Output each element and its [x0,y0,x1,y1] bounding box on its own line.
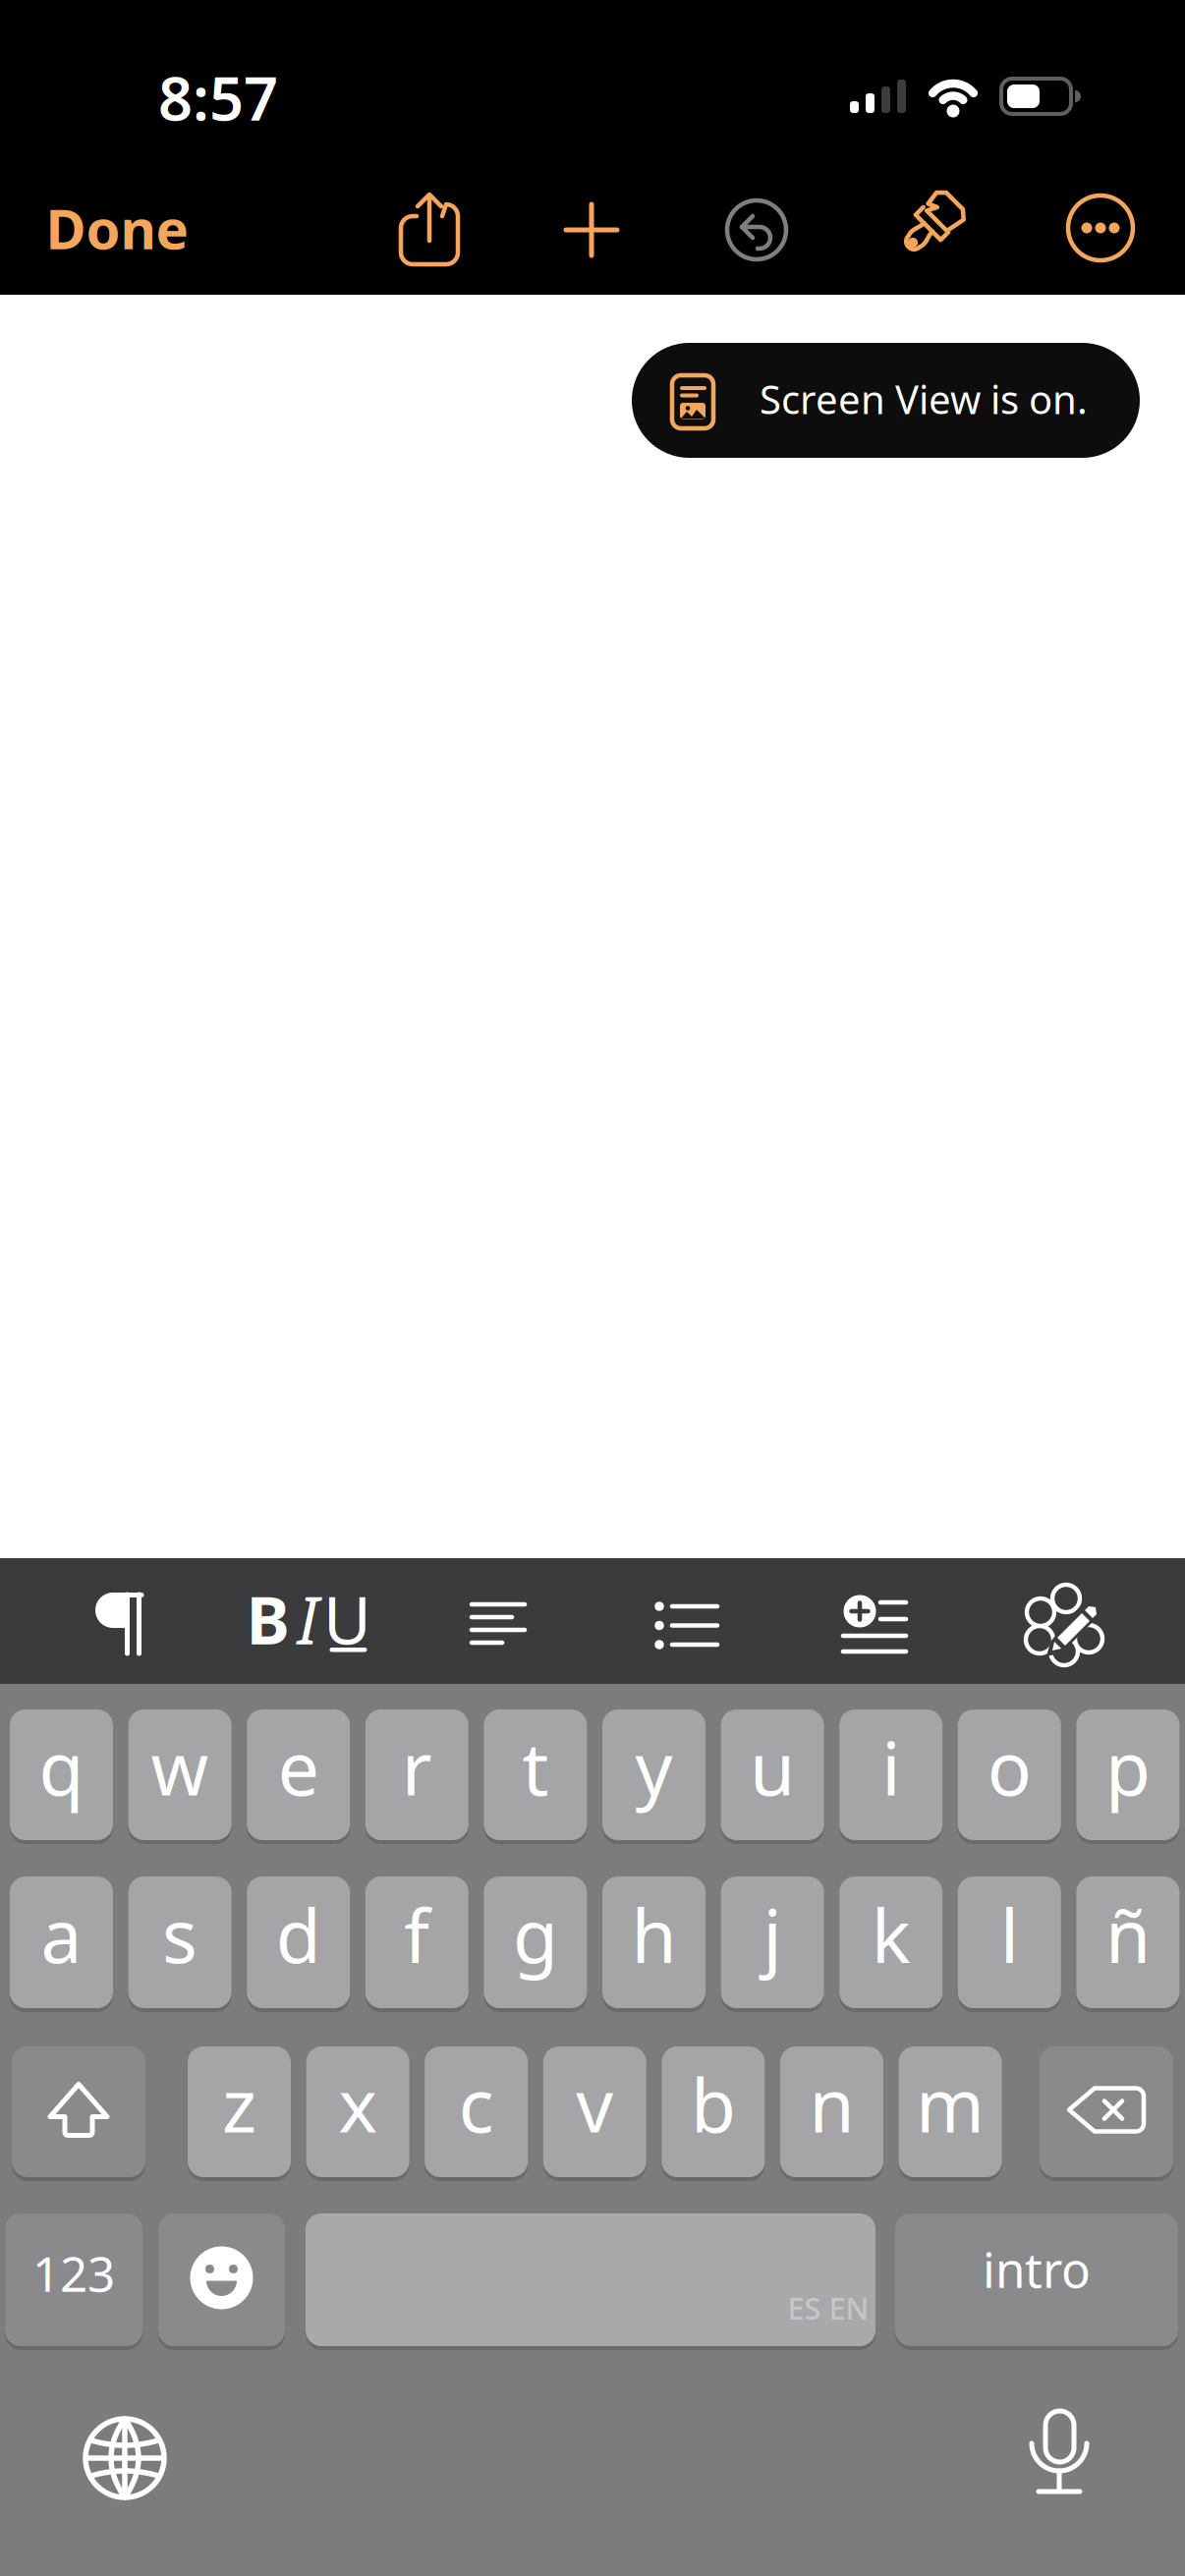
button[interactable]: a [10,1876,113,2012]
button[interactable]: Writing Tools [1020,1580,1108,1668]
staticText: 8:57 [158,57,278,137]
button[interactable]: Markup [883,184,972,272]
button[interactable]: Bold, italic, underline [247,1572,370,1670]
button[interactable]: e [247,1709,350,1844]
staticText: y [635,1718,673,1816]
staticText: Done [46,191,188,264]
button[interactable]: Undo [712,186,801,274]
button[interactable]: Alignment [455,1580,543,1668]
staticText: m [916,2055,985,2153]
button[interactable]: x [306,2046,409,2181]
button[interactable]: More [1056,184,1145,272]
button[interactable]: Delete [1040,2046,1173,2181]
staticText: n [809,2055,854,2153]
button[interactable]: g [484,1876,587,2012]
staticText: d [276,1886,321,1983]
staticText: j [763,1886,782,1983]
button[interactable]: z [188,2046,291,2181]
button[interactable]: Share [385,181,474,279]
staticText: i [882,1718,900,1816]
staticText: e [278,1718,319,1816]
staticText: o [987,1718,1032,1816]
staticText: p [1105,1718,1151,1816]
button[interactable]: Add attachment [547,186,636,274]
button[interactable]: f [365,1876,468,2012]
button[interactable]: 123 [5,2213,142,2350]
button[interactable]: Next keyboard [81,2414,169,2502]
button[interactable]: t [484,1709,587,1844]
staticText: intro [983,2237,1091,2301]
button[interactable]: Done [0,184,235,272]
button[interactable]: Shift [12,2046,145,2181]
staticText: b [691,2055,736,2153]
button[interactable]: s [128,1876,231,2012]
staticText: Screen View is on. [760,373,1088,425]
button[interactable]: c [425,2046,528,2181]
button[interactable]: r [365,1709,468,1844]
staticText: w [151,1718,209,1816]
button[interactable]: intro [895,2213,1178,2350]
button[interactable]: m [899,2046,1002,2181]
button[interactable]: p [1076,1709,1179,1844]
button[interactable]: y [602,1709,705,1844]
staticText: x [339,2055,377,2153]
button[interactable]: w [128,1709,231,1844]
button[interactable]: q [10,1709,113,1844]
button[interactable]: k [839,1876,942,2012]
button[interactable]: h [602,1876,705,2012]
staticText: U [323,1576,371,1663]
staticText: c [459,2055,494,2153]
staticText: g [513,1886,558,1983]
button[interactable]: d [247,1876,350,2012]
button[interactable]: o [958,1709,1061,1844]
staticText: k [871,1886,911,1983]
button[interactable]: Paragraph styles [75,1574,163,1672]
staticText: s [162,1886,198,1983]
button[interactable]: ñ [1076,1876,1179,2012]
button[interactable]: Emoji [158,2213,285,2350]
button[interactable]: l [958,1876,1061,2012]
button[interactable]: Insert list [831,1583,920,1671]
button[interactable]: Dictation [1015,2409,1103,2497]
button[interactable]: i [839,1709,942,1844]
button[interactable]: u [721,1709,824,1844]
button[interactable]: v [543,2046,646,2181]
staticText: ñ [1105,1886,1151,1983]
staticText: f [404,1886,430,1983]
staticText: I [297,1576,319,1663]
staticText: v [576,2055,613,2153]
staticText: h [631,1886,677,1983]
staticText: a [41,1886,82,1983]
button[interactable]: n [780,2046,883,2181]
button[interactable]: b [662,2046,765,2181]
staticText: 123 [32,2241,115,2305]
button[interactable]: Space [306,2213,875,2350]
staticText: u [750,1718,795,1816]
staticText: t [522,1718,549,1816]
button[interactable]: Lists [643,1580,731,1668]
staticText: z [222,2055,256,2153]
staticText: l [1000,1886,1019,1983]
staticText: B [246,1576,289,1663]
staticText: q [39,1718,84,1816]
staticText: r [402,1718,432,1816]
staticText: ES EN [788,2288,869,2328]
button[interactable]: j [721,1876,824,2012]
